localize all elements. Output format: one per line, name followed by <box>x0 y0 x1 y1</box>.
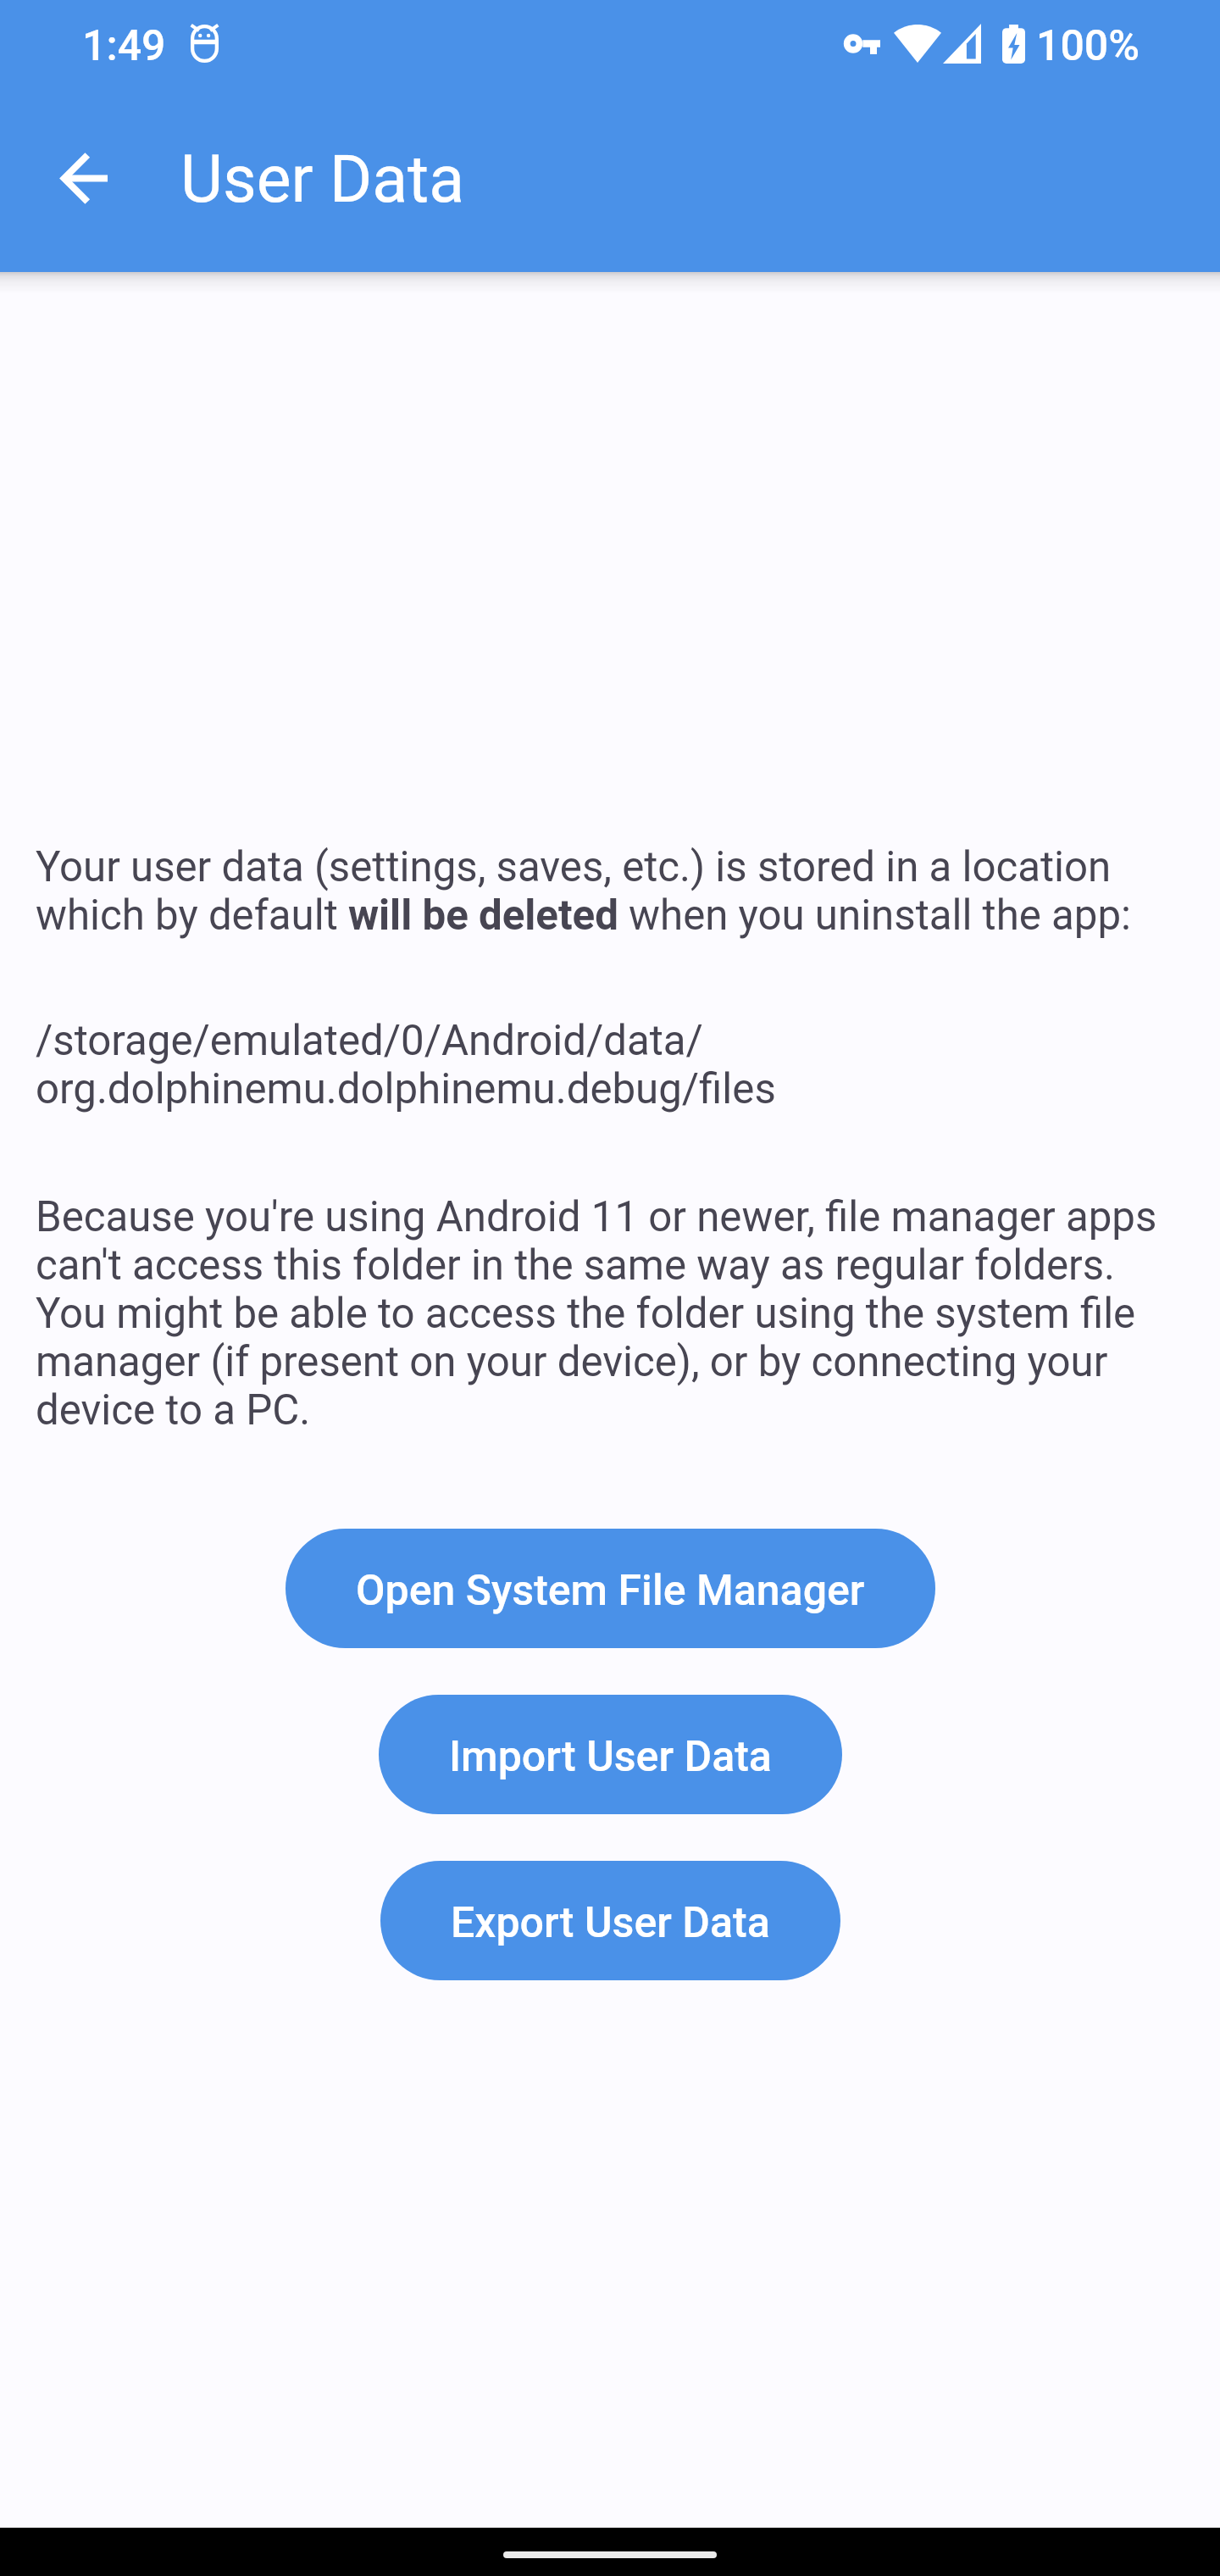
button[interactable]: Export User Data <box>380 1861 840 1980</box>
staticText: Open System File Manager <box>356 1566 865 1616</box>
button[interactable]: Open System File Manager <box>286 1529 935 1648</box>
staticText: Because you're using Android 11 or newer… <box>36 1193 1184 1435</box>
staticText: Export User Data <box>451 1898 770 1948</box>
staticText: 100% <box>1036 21 1140 71</box>
button[interactable]: Back <box>36 130 130 225</box>
staticText: 1:49 <box>82 21 166 71</box>
button[interactable]: Import User Data <box>379 1695 842 1814</box>
staticText: /storage/emulated/0/Android/data/org.dol… <box>36 1017 1184 1113</box>
staticText: Import User Data <box>449 1732 772 1782</box>
staticText: Your user data (settings, saves, etc.) i… <box>36 843 1184 940</box>
staticText: User Data <box>180 137 465 219</box>
